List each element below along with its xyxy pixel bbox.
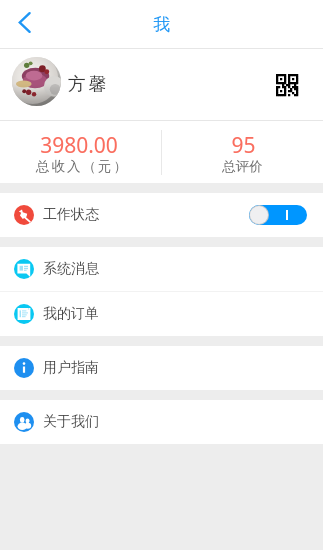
staticText: 我 [153,14,170,35]
button[interactable]: Work status toggle [249,205,307,225]
button[interactable]: 用户指南 [0,346,323,390]
staticText: 3980.00 [40,131,118,160]
button[interactable]: 我的订单 [0,292,323,336]
staticText: 总收入（元） [35,158,128,175]
button[interactable]: Back [0,0,46,48]
staticText: 关于我们 [43,413,99,431]
staticText: 工作状态 [43,206,99,224]
staticText: 用户指南 [43,359,99,377]
button[interactable]: 方馨 [0,49,323,120]
button[interactable]: 工作状态 [0,193,323,237]
button[interactable]: 关于我们 [0,400,323,444]
staticText: 95 [231,131,256,160]
button[interactable]: 系统消息 [0,247,323,291]
staticText: 我的订单 [43,305,99,323]
staticText: 总评价 [222,158,263,175]
button[interactable]: QR code [265,63,309,107]
staticText: 系统消息 [43,260,99,278]
staticText: 方馨 [68,73,109,96]
